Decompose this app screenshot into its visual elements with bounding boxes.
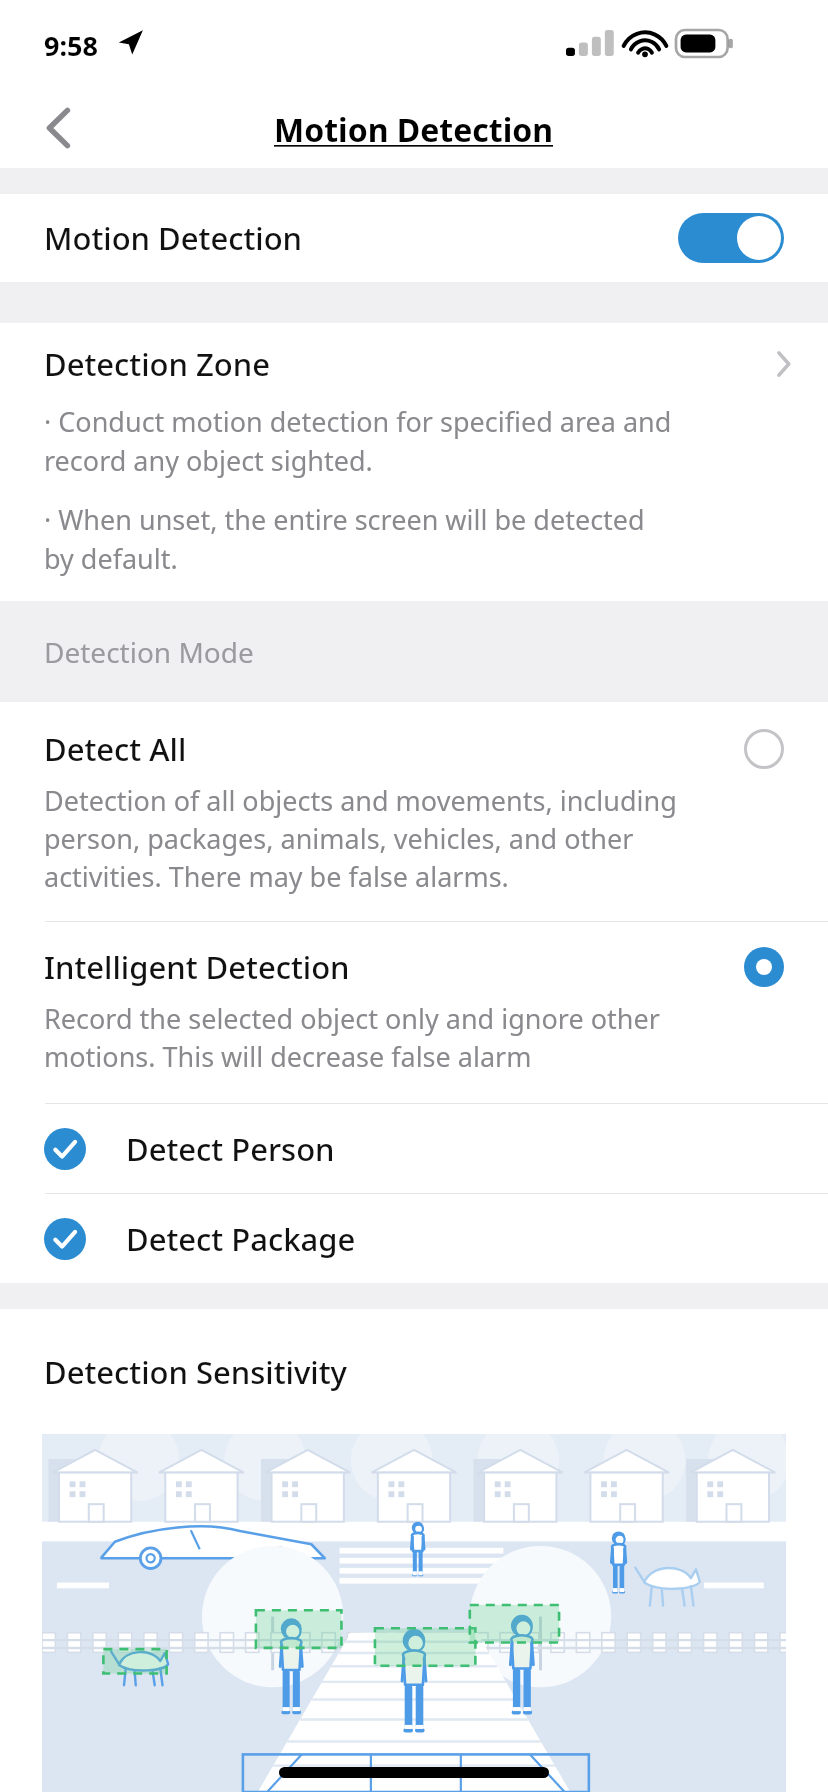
button[interactable]: Detection Zone [0, 323, 828, 601]
staticText: Detect All [44, 728, 187, 770]
staticText: Motion Detection [44, 217, 303, 259]
staticText: 9:58 [44, 27, 98, 64]
button[interactable]: Detect Package [0, 1194, 828, 1283]
button[interactable] [678, 213, 784, 263]
button[interactable]: Intelligent Detection [0, 922, 828, 1103]
button[interactable]: Back [44, 88, 160, 168]
staticText: Intelligent Detection [44, 946, 350, 988]
button[interactable]: Motion Detection [0, 194, 828, 282]
button[interactable]: Detect Person [0, 1104, 828, 1193]
staticText: Motion Detection [274, 108, 554, 152]
button[interactable]: Detect All [0, 702, 828, 921]
staticText: Detection of all objects and movements, … [44, 782, 677, 895]
staticText: · Conduct motion detection for specified… [44, 403, 672, 479]
staticText: Detection Mode [44, 633, 254, 671]
staticText: Detection Zone [44, 343, 270, 385]
staticText: · When unset, the entire screen will be … [44, 501, 645, 577]
staticText: Detection Sensitivity [44, 1351, 347, 1393]
staticText: Record the selected object only and igno… [44, 1000, 660, 1075]
staticText: Detect Package [126, 1218, 356, 1260]
staticText: Detect Person [126, 1128, 335, 1170]
